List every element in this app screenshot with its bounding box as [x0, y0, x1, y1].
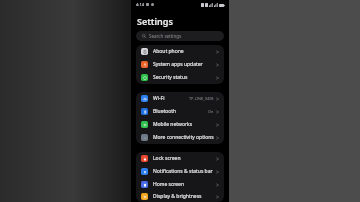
- button[interactable]: More connectivity options: [136, 131, 224, 144]
- button[interactable]: Mobile networks: [136, 118, 224, 131]
- button[interactable]: Bluetooth: [136, 105, 224, 118]
- staticText: Home screen: [153, 181, 216, 188]
- staticText: Search settings: [149, 33, 182, 39]
- staticText: Security status: [153, 74, 216, 81]
- button[interactable]: Home screen: [136, 178, 224, 191]
- button[interactable]: Lock screen: [136, 152, 224, 165]
- staticText: Wi-Fi: [153, 95, 189, 102]
- button[interactable]: About phone: [136, 45, 224, 58]
- staticText: Settings: [137, 15, 173, 27]
- button[interactable]: Search settings: [136, 31, 224, 41]
- staticText: Mobile networks: [153, 121, 216, 128]
- button[interactable]: Security status: [136, 71, 224, 84]
- staticText: About phone: [153, 48, 216, 55]
- staticText: More connectivity options: [153, 134, 216, 141]
- button[interactable]: Notifications & status bar: [136, 165, 224, 178]
- button[interactable]: Wi-Fi: [136, 92, 224, 105]
- staticText: Bluetooth: [153, 108, 208, 115]
- staticText: Notifications & status bar: [153, 168, 216, 175]
- staticText: Display & brightness: [153, 193, 216, 200]
- staticText: 4:14: [136, 2, 144, 7]
- staticText: On: [208, 109, 214, 114]
- button[interactable]: System apps updater: [136, 58, 224, 71]
- staticText: System apps updater: [153, 61, 216, 68]
- staticText: Lock screen: [153, 155, 216, 162]
- button[interactable]: Display & brightness: [136, 191, 224, 202]
- staticText: TP-LINK_9408: [189, 96, 214, 101]
